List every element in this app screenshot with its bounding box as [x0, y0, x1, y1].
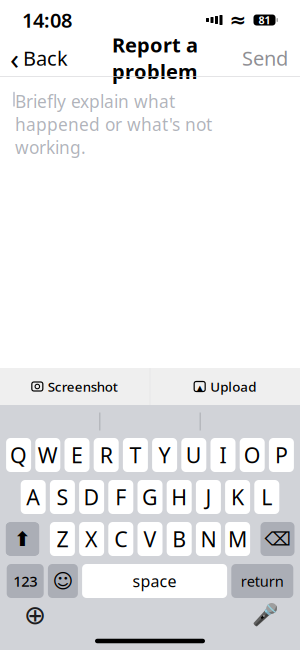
button[interactable]: B — [167, 522, 192, 556]
staticText: J — [205, 483, 211, 511]
button[interactable]: X — [79, 522, 104, 556]
staticText: I — [219, 441, 226, 469]
staticText: H — [171, 483, 187, 511]
staticText: C — [114, 525, 127, 553]
button[interactable]: M — [225, 522, 250, 556]
staticText: R — [100, 441, 113, 469]
staticText: ⬆ — [14, 528, 31, 550]
staticText: ⊕ — [24, 600, 46, 630]
button[interactable]: G — [137, 480, 162, 514]
button[interactable]: space — [82, 564, 227, 598]
staticText: G — [142, 483, 158, 511]
staticText: 123 — [13, 571, 37, 591]
staticText: Q — [10, 441, 27, 469]
staticText: Report a problem — [112, 31, 198, 84]
button[interactable]: E — [64, 438, 89, 472]
staticText: Back — [23, 45, 68, 71]
staticText: M — [228, 525, 247, 553]
button[interactable]: D — [79, 480, 104, 514]
button[interactable]: W — [35, 438, 60, 472]
staticText: A — [26, 483, 40, 511]
staticText: ‹ — [10, 38, 19, 77]
staticText: X — [85, 525, 98, 553]
button[interactable]: Y — [152, 438, 177, 472]
button[interactable]: ‹ — [0, 41, 76, 75]
staticText: Y — [159, 441, 171, 469]
button[interactable]: H — [167, 480, 192, 514]
staticText: T — [129, 441, 141, 469]
button[interactable]: ▲ — [150, 368, 300, 405]
button[interactable]: Q — [6, 438, 31, 472]
button[interactable]: O — [240, 438, 265, 472]
staticText: S — [56, 483, 68, 511]
button[interactable]: Change keyboard — [20, 600, 50, 630]
button[interactable]: Send — [234, 41, 300, 75]
staticText: space — [133, 570, 177, 592]
button[interactable]: A — [21, 480, 46, 514]
button[interactable]: S — [50, 480, 75, 514]
button[interactable]: J — [196, 480, 221, 514]
staticText: ⌫ — [264, 528, 290, 550]
staticText: U — [186, 441, 202, 469]
button[interactable]: Numbers — [7, 564, 44, 598]
staticText: 🎤 — [251, 603, 278, 627]
staticText: ≈ — [229, 9, 246, 31]
button[interactable]: L — [254, 480, 279, 514]
staticText: Screenshot — [48, 378, 118, 395]
button[interactable]: Screenshot — [0, 368, 150, 405]
button[interactable]: Emoji — [48, 564, 78, 598]
button[interactable]: I — [210, 438, 235, 472]
staticText: W — [38, 441, 58, 469]
staticText: Briefly explain what happened or what's … — [15, 90, 212, 159]
staticText: N — [200, 525, 216, 553]
staticText: Upload — [210, 378, 256, 395]
button[interactable]: P — [269, 438, 294, 472]
staticText: D — [84, 483, 100, 511]
staticText: Z — [56, 525, 68, 553]
staticText: 14:08 — [22, 7, 72, 33]
staticText: Send — [242, 45, 288, 71]
staticText: K — [231, 483, 244, 511]
button[interactable]: U — [181, 438, 206, 472]
button[interactable]: Shift — [5, 522, 39, 556]
staticText: 81 — [258, 13, 270, 27]
button[interactable]: Z — [50, 522, 75, 556]
staticText: E — [71, 441, 83, 469]
button[interactable]: Return — [231, 564, 293, 598]
button[interactable]: N — [196, 522, 221, 556]
button[interactable]: Delete — [260, 522, 294, 556]
button[interactable]: R — [94, 438, 119, 472]
staticText: B — [172, 525, 186, 553]
staticText: return — [241, 571, 284, 591]
staticText: ▲ — [197, 383, 203, 393]
staticText: ☺ — [52, 570, 73, 592]
staticText: P — [275, 441, 288, 469]
button[interactable]: Dictate — [250, 600, 280, 630]
button[interactable]: V — [137, 522, 162, 556]
staticText: O — [244, 441, 261, 469]
button[interactable]: T — [123, 438, 148, 472]
staticText: L — [261, 483, 272, 511]
button[interactable]: F — [108, 480, 133, 514]
button[interactable]: K — [225, 480, 250, 514]
button[interactable]: C — [108, 522, 133, 556]
staticText: V — [143, 525, 156, 553]
staticText: F — [115, 483, 126, 511]
